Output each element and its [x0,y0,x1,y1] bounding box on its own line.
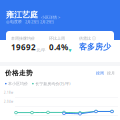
staticText: 供需比 ⓘ [79,36,96,41]
staticText: ◎ 电度桥 [6,19,22,24]
staticText: 雍江艺庭 [6,10,38,20]
staticText: 长宁新房均价(万/平) [35,81,70,86]
staticText: 2月23日 2月29日 [25,19,54,24]
staticText: 0.4% [49,42,68,52]
staticText: 19692 [11,42,36,52]
staticText: 本周挂牌均价 [11,36,35,41]
staticText: 按周 [96,71,104,75]
staticText: 环比上周 [49,36,65,41]
button[interactable]: 按月 [107,71,115,75]
button[interactable]: 小区详情 > [41,14,60,20]
staticText: 本小区均价 [8,81,28,86]
staticText: 2.04w [4,100,13,103]
staticText: 2.18w [4,91,13,94]
button[interactable]: 按周 [96,71,104,75]
staticText: 价格走势 [5,69,33,77]
staticText: 小区详情 > [41,14,60,20]
staticText: ▼ [68,48,71,52]
staticText: 按月 [107,71,115,75]
staticText: 元/平 [36,47,45,52]
staticText: 客多房少 [79,42,111,52]
